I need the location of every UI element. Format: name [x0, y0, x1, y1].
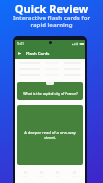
button[interactable]: A deeper read of a one-way street. — [17, 105, 83, 165]
other: Back — [17, 51, 22, 56]
staticText: Quick Review — [0, 1, 103, 16]
button[interactable]: What is the capital city of France? — [17, 82, 83, 100]
staticText: 9:41 — [17, 41, 24, 46]
staticText: Flash Cards — [26, 50, 50, 56]
staticText: What is the capital city of France? — [23, 91, 78, 96]
staticText: Interactive flash cards for rapid learni… — [0, 14, 103, 29]
staticText: A deeper read of a one-way street. — [24, 130, 76, 140]
button[interactable]: Back — [15, 47, 85, 59]
